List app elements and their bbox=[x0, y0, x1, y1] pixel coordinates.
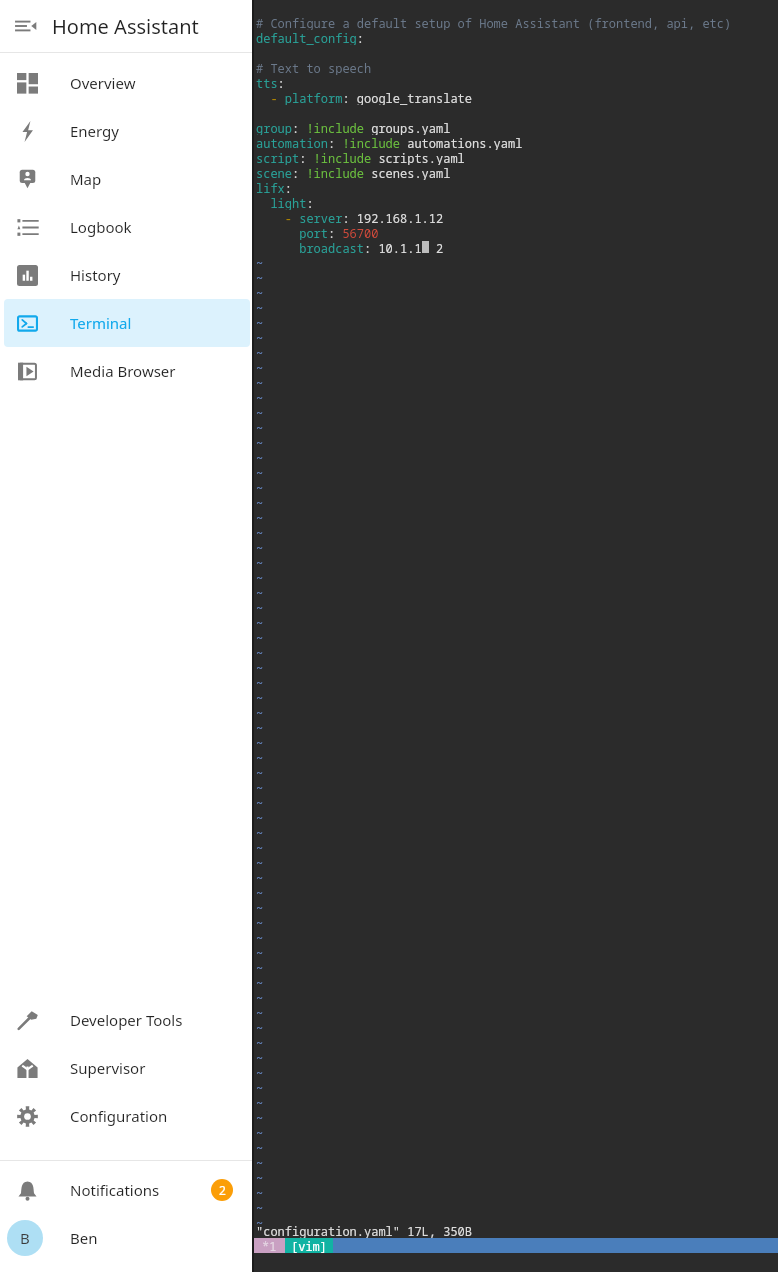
staticText: ~ bbox=[256, 405, 264, 420]
staticText: ~ bbox=[256, 855, 264, 870]
staticText: ~ bbox=[256, 390, 264, 405]
staticText: ~ bbox=[256, 450, 264, 465]
staticText: ~ bbox=[256, 480, 264, 495]
staticText: ~ bbox=[256, 420, 264, 435]
staticText: ~ bbox=[256, 585, 264, 600]
staticText: ~ bbox=[256, 900, 264, 915]
button[interactable]: History bbox=[4, 251, 250, 299]
staticText: ~ bbox=[256, 870, 264, 885]
staticText: Notifications bbox=[70, 1180, 160, 1200]
staticText: ~ bbox=[256, 720, 264, 735]
staticText: "configuration.yaml" 17L, 350B bbox=[256, 1223, 473, 1238]
staticText: ~ bbox=[256, 315, 264, 330]
staticText: ~ bbox=[256, 570, 264, 585]
staticText: ~ bbox=[256, 1200, 264, 1215]
staticText: ~ bbox=[256, 435, 264, 450]
staticText: ~ bbox=[256, 705, 264, 720]
staticText: # Text to speech bbox=[256, 60, 372, 75]
staticText: ~ bbox=[256, 330, 264, 345]
staticText: ~ bbox=[256, 345, 264, 360]
staticText: ~ bbox=[256, 735, 264, 750]
staticText: ~ bbox=[256, 780, 264, 795]
button[interactable]: Media Browser bbox=[4, 347, 250, 395]
staticText: Energy bbox=[70, 121, 119, 141]
staticText: ~ bbox=[256, 630, 264, 645]
staticText: ~ bbox=[256, 795, 264, 810]
staticText: ~ bbox=[256, 1095, 264, 1110]
staticText: ~ bbox=[256, 660, 264, 675]
staticText: ~ bbox=[256, 825, 264, 840]
staticText: ~ bbox=[256, 765, 264, 780]
staticText: Map bbox=[70, 169, 102, 189]
staticText: Supervisor bbox=[70, 1058, 146, 1078]
staticText: Media Browser bbox=[70, 361, 176, 381]
staticText: ~ bbox=[256, 810, 264, 825]
button[interactable]: Configuration bbox=[4, 1092, 250, 1140]
staticText: Ben bbox=[70, 1228, 98, 1248]
staticText: ~ bbox=[256, 645, 264, 660]
button[interactable]: Logbook bbox=[4, 203, 250, 251]
button[interactable]: Energy bbox=[4, 107, 250, 155]
staticText: ~ bbox=[256, 525, 264, 540]
staticText: - server: 192.168.1.12 bbox=[256, 210, 444, 225]
staticText: ~ bbox=[256, 750, 264, 765]
staticText: ~ bbox=[256, 1065, 264, 1080]
staticText: ~ bbox=[256, 1020, 264, 1035]
staticText: Configuration bbox=[70, 1106, 168, 1126]
button[interactable]: Map bbox=[4, 155, 250, 203]
staticText: Developer Tools bbox=[70, 1010, 183, 1030]
staticText: Terminal bbox=[70, 313, 132, 333]
staticText: ~ bbox=[256, 1140, 264, 1155]
staticText: broadcast: 10.1.10 2 bbox=[256, 240, 444, 255]
staticText: ~ bbox=[256, 540, 264, 555]
staticText: 2 bbox=[219, 1182, 226, 1198]
button[interactable]: B bbox=[0, 1214, 254, 1262]
staticText: ~ bbox=[256, 885, 264, 900]
staticText: light: bbox=[256, 195, 314, 210]
staticText: ~ bbox=[256, 600, 264, 615]
staticText: ~ bbox=[256, 1185, 264, 1200]
staticText: lifx: bbox=[256, 180, 293, 195]
staticText: ~ bbox=[256, 270, 264, 285]
staticText: ~ bbox=[256, 1035, 264, 1050]
staticText: ~ bbox=[256, 1170, 264, 1185]
staticText: ~ bbox=[256, 1155, 264, 1170]
button[interactable]: Developer Tools bbox=[4, 996, 250, 1044]
staticText: ~ bbox=[256, 300, 264, 315]
button[interactable]: Supervisor bbox=[4, 1044, 250, 1092]
staticText: scene: !include scenes.yaml bbox=[256, 165, 451, 180]
staticText: group: !include groups.yaml bbox=[256, 120, 451, 135]
staticText: B bbox=[20, 1228, 30, 1248]
staticText: ~ bbox=[256, 960, 264, 975]
button[interactable]: Terminal bbox=[4, 299, 250, 347]
staticText: Logbook bbox=[70, 217, 132, 237]
staticText: ~ bbox=[256, 840, 264, 855]
staticText: ~ bbox=[256, 615, 264, 630]
staticText: ~ bbox=[256, 360, 264, 375]
staticText: ~ bbox=[256, 1050, 264, 1065]
staticText: default_config: bbox=[256, 30, 365, 45]
staticText: ~ bbox=[256, 375, 264, 390]
staticText: Home Assistant bbox=[52, 13, 199, 40]
staticText: ~ bbox=[256, 1005, 264, 1020]
staticText: Overview bbox=[70, 73, 136, 93]
staticText: ~ bbox=[256, 510, 264, 525]
staticText: [vim] bbox=[291, 1238, 328, 1253]
staticText: ~ bbox=[256, 690, 264, 705]
button[interactable]: Notifications bbox=[4, 1166, 250, 1214]
staticText: ~ bbox=[256, 285, 264, 300]
staticText: ~ bbox=[256, 990, 264, 1005]
staticText: # Configure a default setup of Home Assi… bbox=[256, 15, 732, 30]
staticText: *1 bbox=[262, 1238, 277, 1253]
staticText: port: 56700 bbox=[256, 225, 379, 240]
button[interactable]: Overview bbox=[4, 59, 250, 107]
button[interactable]: Collapse sidebar bbox=[0, 0, 52, 52]
staticText: ~ bbox=[256, 1080, 264, 1095]
staticText: ~ bbox=[256, 915, 264, 930]
staticText: ~ bbox=[256, 255, 264, 270]
staticText: ~ bbox=[256, 1125, 264, 1140]
staticText: ~ bbox=[256, 975, 264, 990]
staticText: ~ bbox=[256, 1215, 264, 1230]
staticText: automation: !include automations.yaml bbox=[256, 135, 523, 150]
staticText: ~ bbox=[256, 930, 264, 945]
